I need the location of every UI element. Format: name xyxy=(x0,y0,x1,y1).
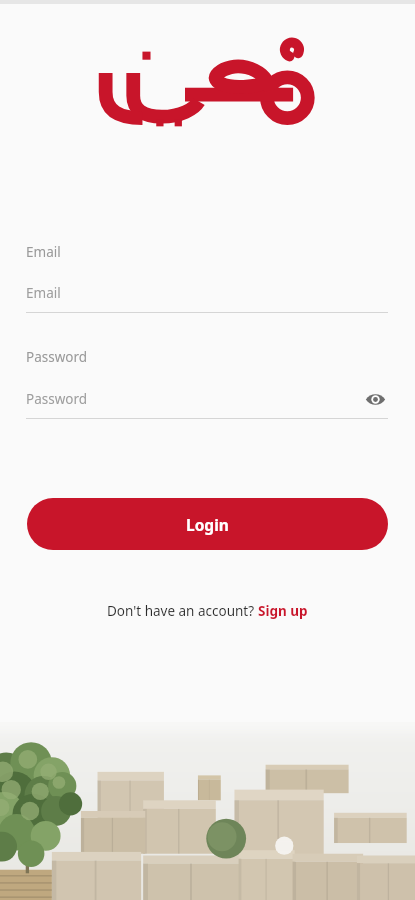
staticText: Email xyxy=(26,284,61,302)
button[interactable]: Password xyxy=(26,390,362,408)
staticText: Email xyxy=(26,243,61,261)
staticText: Login xyxy=(186,514,229,535)
staticText: Don't have an account? xyxy=(107,602,258,620)
staticText: Password xyxy=(26,390,88,408)
button[interactable]: Sign up xyxy=(258,602,308,620)
staticText: Sign up xyxy=(258,602,308,620)
button[interactable]: Email xyxy=(26,282,388,304)
button[interactable]: Login xyxy=(27,498,388,550)
button[interactable]: Show password xyxy=(362,387,388,411)
staticText: Password xyxy=(26,348,88,366)
